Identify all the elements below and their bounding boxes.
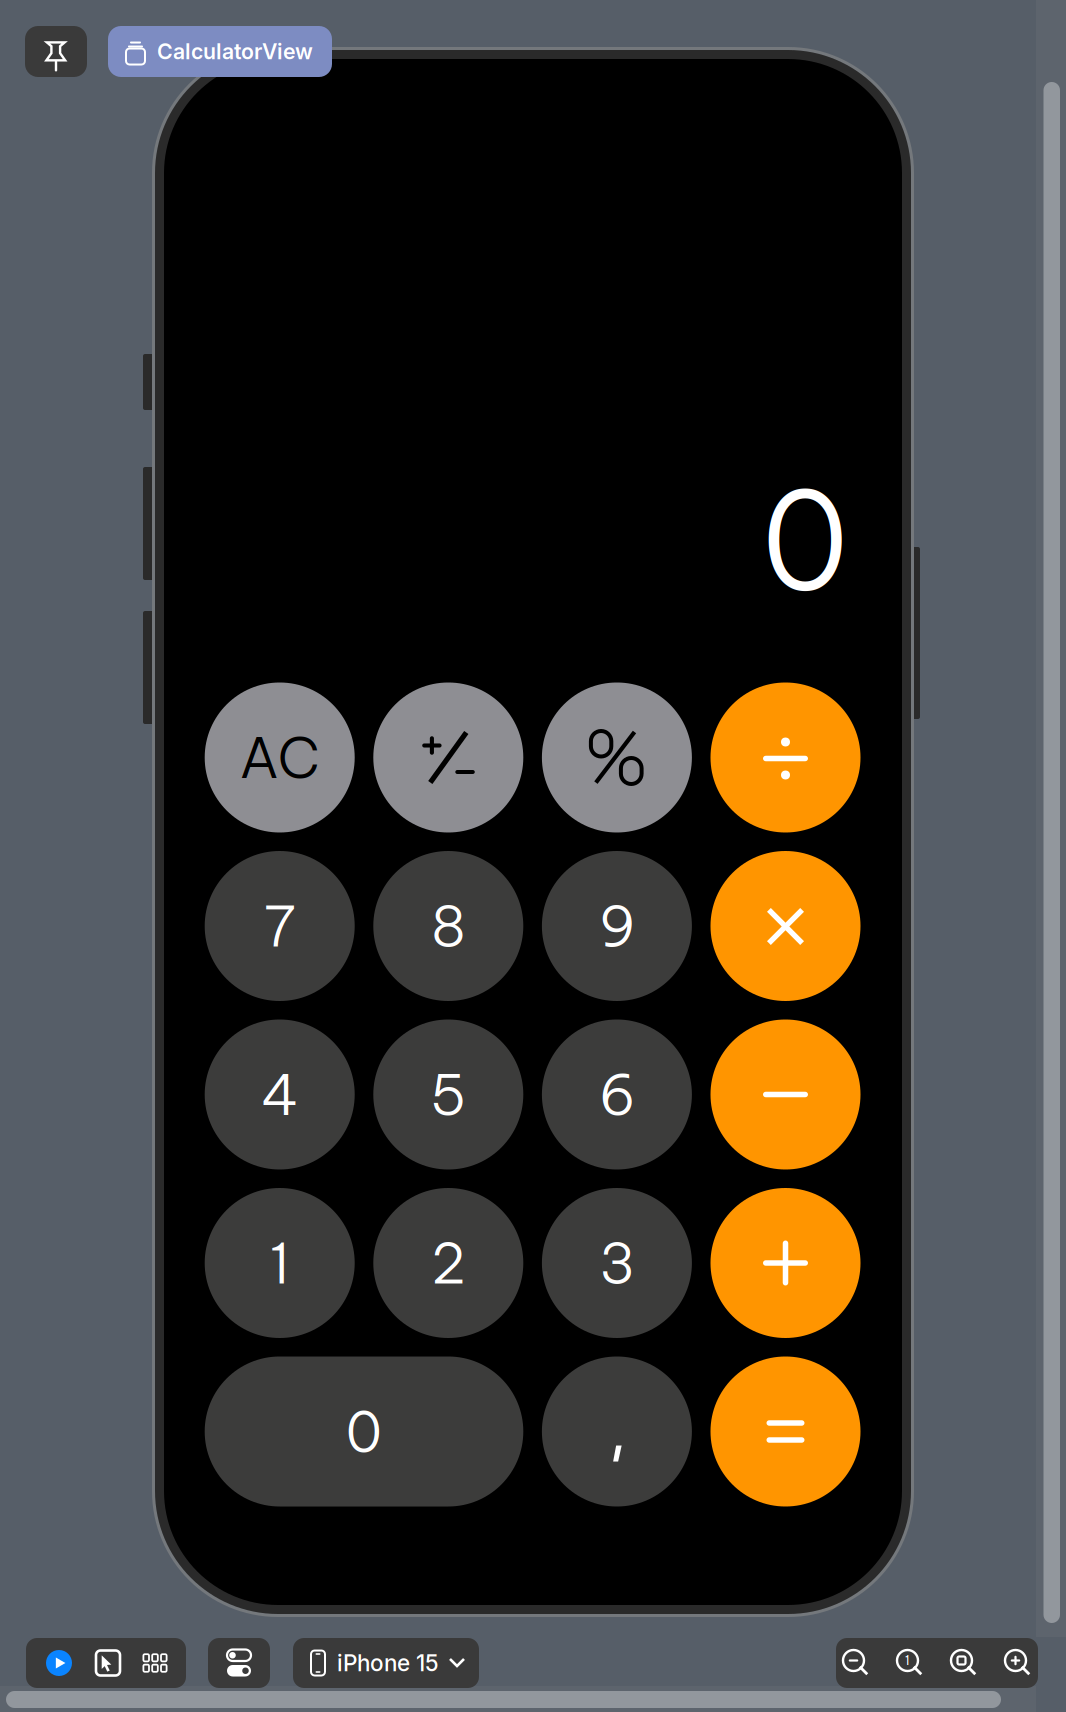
button[interactable] <box>710 1019 860 1169</box>
button[interactable]: iPhone 15 <box>293 1638 479 1688</box>
staticText: 8 <box>431 891 466 961</box>
staticText: 9 <box>598 891 635 961</box>
button[interactable] <box>373 682 523 832</box>
button[interactable] <box>542 1356 692 1506</box>
button[interactable]: Actual size <box>896 1649 924 1677</box>
button[interactable]: Variants <box>143 1653 167 1673</box>
button[interactable]: 6 <box>542 1019 692 1169</box>
staticText: 0 <box>761 455 849 625</box>
button[interactable] <box>710 1356 860 1506</box>
button[interactable]: 7 <box>205 851 355 1001</box>
button[interactable]: 1 <box>205 1188 355 1338</box>
staticText: 1 <box>270 1228 290 1298</box>
button[interactable]: Selectable <box>95 1649 121 1676</box>
staticText: CalculatorView <box>157 39 313 64</box>
button[interactable]: 8 <box>373 851 523 1001</box>
staticText: 4 <box>261 1059 299 1130</box>
staticText: 7 <box>263 891 296 961</box>
staticText: 6 <box>598 1059 635 1130</box>
staticText: 0 <box>345 1396 382 1467</box>
staticText: AC <box>239 722 320 793</box>
button[interactable]: CalculatorView <box>108 26 332 77</box>
button[interactable] <box>710 1188 860 1338</box>
button[interactable]: Zoom out <box>842 1649 870 1677</box>
button[interactable]: 5 <box>373 1019 523 1169</box>
button[interactable] <box>710 682 860 832</box>
staticText: 2 <box>431 1228 466 1298</box>
button[interactable] <box>542 682 692 832</box>
button[interactable]: 2 <box>373 1188 523 1338</box>
button[interactable]: 0 <box>205 1356 523 1506</box>
button[interactable]: Zoom in <box>1004 1649 1032 1677</box>
button[interactable]: AC <box>205 682 355 832</box>
button[interactable]: 3 <box>542 1188 692 1338</box>
staticText: 1 <box>905 1653 910 1668</box>
button[interactable]: 4 <box>205 1019 355 1169</box>
button[interactable]: 9 <box>542 851 692 1001</box>
button[interactable]: Run preview <box>45 1649 73 1677</box>
button[interactable]: Pin preview <box>25 26 87 77</box>
button[interactable]: Zoom to fit <box>950 1649 978 1677</box>
staticText: 5 <box>430 1059 467 1130</box>
button[interactable] <box>710 851 860 1001</box>
staticText: 3 <box>599 1228 635 1298</box>
button[interactable]: Device settings <box>208 1638 270 1688</box>
staticText: iPhone 15 <box>337 1649 439 1677</box>
